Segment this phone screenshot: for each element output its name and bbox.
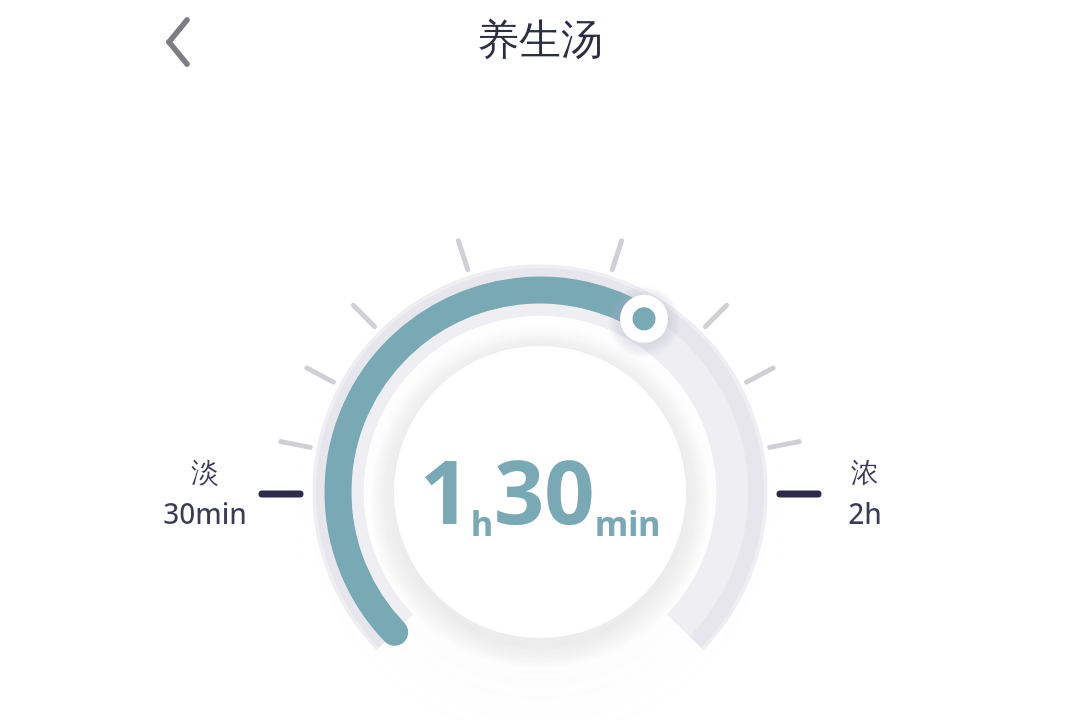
staticText: min xyxy=(595,500,661,546)
button[interactable]: 浓 xyxy=(820,455,910,532)
button[interactable]: 淡 xyxy=(150,455,260,532)
staticText: 2h xyxy=(848,494,882,532)
staticText: 浓 xyxy=(851,455,879,490)
staticText: 30 xyxy=(494,430,595,550)
staticText: 30min xyxy=(163,494,247,532)
button[interactable]: Back xyxy=(144,8,212,76)
staticText: 淡 xyxy=(191,455,219,490)
staticText: 养生汤 xyxy=(0,14,1080,67)
button[interactable] xyxy=(0,0,1080,720)
staticText: h xyxy=(471,500,494,546)
staticText: 1 xyxy=(420,430,471,550)
